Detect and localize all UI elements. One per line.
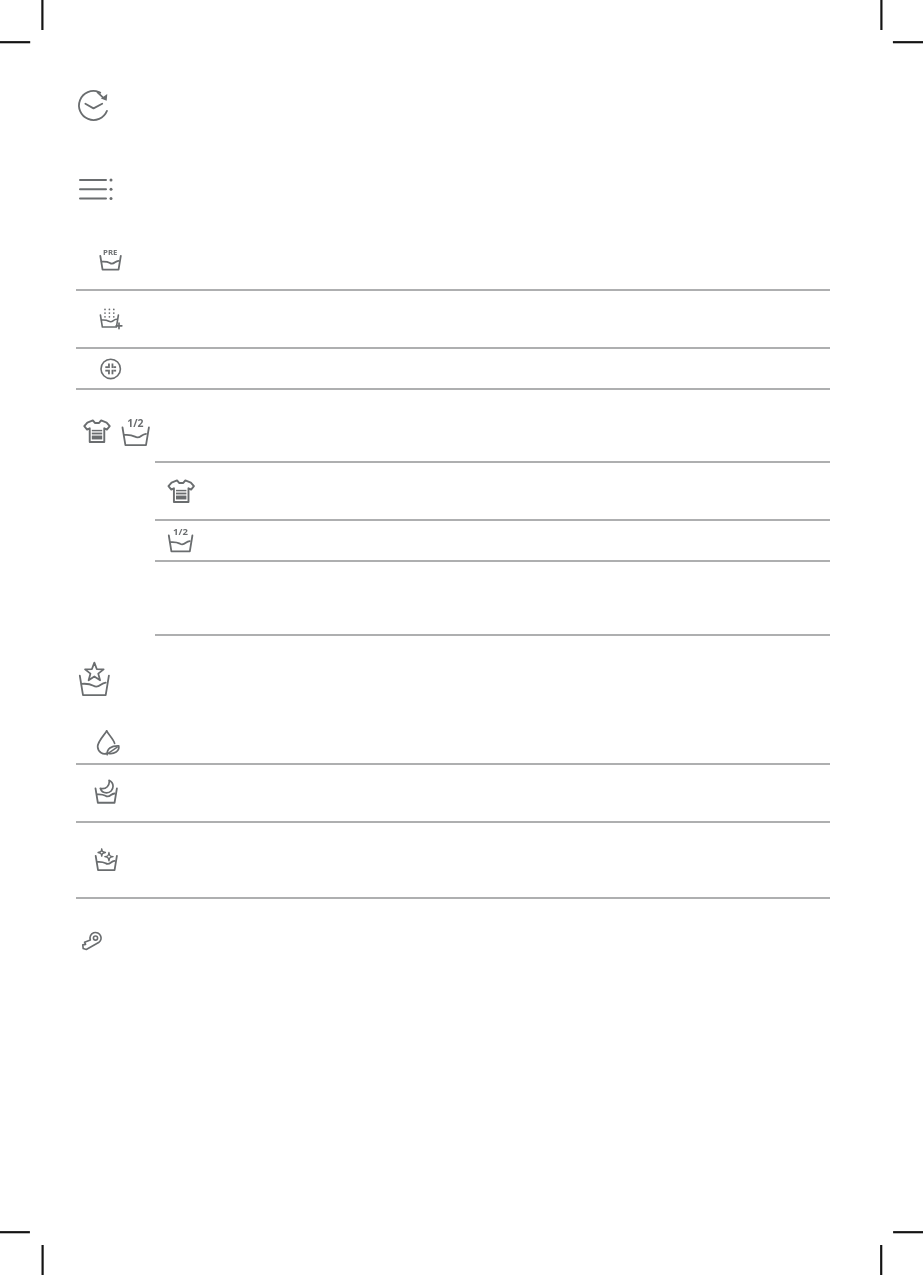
button[interactable]: Programme list [76,166,830,214]
button[interactable]: Child lock [76,900,830,966]
button[interactable]: Prewash plus detergent [76,292,830,348]
button[interactable]: Load size [155,464,830,520]
button[interactable]: Half load [76,406,830,462]
button[interactable]: Favourite programme [76,650,830,764]
button[interactable]: Half load water level [155,522,830,561]
button[interactable]: More options [155,563,830,635]
button[interactable]: Delay start [76,76,830,138]
button[interactable]: Extra rinse [76,350,830,389]
button[interactable]: Prewash [76,240,830,290]
button[interactable]: Extra clean [76,824,830,898]
button[interactable]: Night wash [76,766,830,822]
